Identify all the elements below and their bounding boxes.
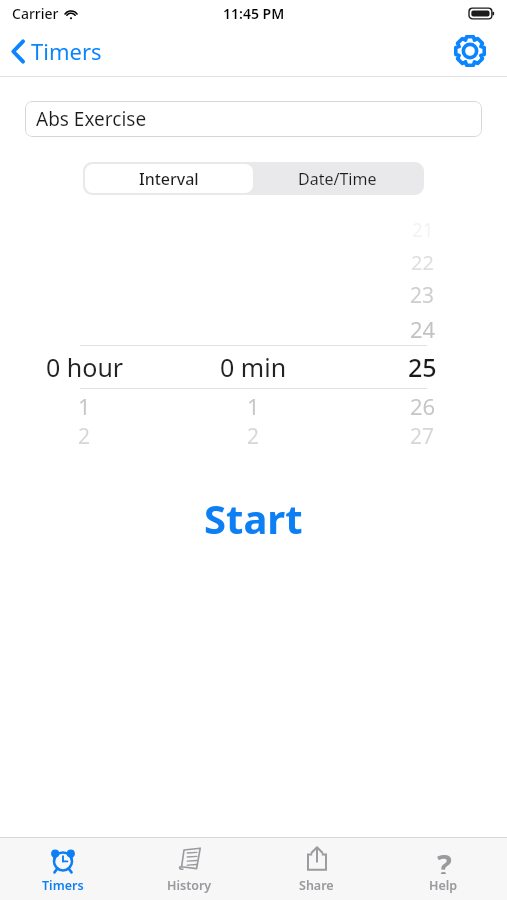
staticText: 21 bbox=[412, 217, 434, 243]
staticText: 2 bbox=[247, 422, 260, 445]
button[interactable]: History bbox=[126, 838, 253, 900]
staticText: Carrier bbox=[12, 4, 59, 23]
button[interactable]: Timers bbox=[0, 838, 126, 900]
staticText: Start bbox=[204, 491, 303, 545]
staticText: 26 bbox=[410, 391, 436, 421]
button[interactable]: Settings bbox=[447, 28, 493, 74]
button[interactable]: ? bbox=[380, 838, 507, 900]
staticText: 0 min bbox=[220, 350, 287, 384]
button[interactable]: Start bbox=[190, 487, 317, 549]
staticText: Help bbox=[429, 877, 458, 894]
staticText: Share bbox=[299, 877, 334, 894]
staticText: 1 bbox=[78, 391, 91, 421]
staticText: 22 bbox=[411, 249, 434, 276]
button[interactable]: Interval bbox=[85, 164, 253, 193]
staticText: 11:45 PM bbox=[223, 4, 285, 23]
staticText: Abs Exercise bbox=[36, 106, 147, 132]
staticText: History bbox=[167, 877, 212, 894]
button[interactable]: 0 hour bbox=[0, 350, 507, 384]
staticText: 2 bbox=[78, 422, 91, 445]
button[interactable]: Date/Time bbox=[253, 164, 422, 193]
button[interactable]: Timers bbox=[6, 32, 108, 70]
staticText: Interval bbox=[139, 168, 199, 190]
staticText: Date/Time bbox=[298, 168, 377, 190]
button[interactable]: Share bbox=[253, 838, 380, 900]
staticText: 23 bbox=[410, 281, 435, 310]
staticText: 27 bbox=[410, 422, 435, 445]
staticText: 0 hour bbox=[46, 350, 124, 384]
staticText: ? bbox=[437, 844, 452, 874]
staticText: Timers bbox=[31, 36, 102, 66]
staticText: 25 bbox=[408, 350, 437, 384]
button[interactable]: Abs Exercise bbox=[25, 101, 482, 137]
staticText: 1 bbox=[247, 391, 260, 421]
staticText: 24 bbox=[410, 314, 436, 344]
staticText: Timers bbox=[42, 877, 84, 894]
